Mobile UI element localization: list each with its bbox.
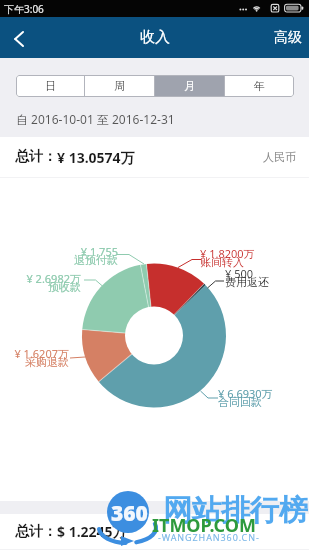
staticText: ¥ 6.6930万 (218, 386, 288, 401)
staticText: ¥ 1.8200万 (200, 246, 270, 261)
staticText: 费用返还 (225, 275, 285, 289)
staticText: 周 (114, 79, 125, 93)
staticText: ¥ 13.0574万 (57, 148, 135, 167)
button[interactable]: 日 (16, 75, 84, 97)
button[interactable]: 周 (85, 75, 154, 97)
staticText: 月 (184, 79, 195, 93)
staticText: $ 1.2245万 (57, 522, 127, 541)
button[interactable]: 月 (155, 75, 224, 97)
staticText: 合同回款 (218, 395, 288, 409)
staticText: 预收款 (11, 280, 81, 294)
staticText: 360 (111, 499, 148, 528)
staticText: 账间转入 (200, 255, 270, 269)
staticText: 下午3:06 (4, 2, 44, 16)
staticText: 采购退款 (0, 355, 69, 369)
button[interactable]: Back (0, 17, 38, 58)
staticText: 总计： (15, 523, 57, 541)
staticText: 人民币 (263, 150, 296, 164)
staticText: ¥ 2.6982万 (11, 271, 81, 286)
staticText: -WANGZHAN360.CN- (158, 531, 260, 543)
staticText: ¥ 500 (225, 266, 285, 281)
staticText: 总计： (15, 148, 57, 166)
staticText: 自 2016-10-01 至 2016-12-31 (16, 111, 175, 127)
staticText: 日 (45, 79, 56, 93)
staticText: ¥ 1,755 (48, 244, 118, 259)
staticText: 高级 (274, 29, 302, 47)
staticText: 退预付款 (48, 253, 118, 267)
staticText: ITMOP.COM (152, 513, 257, 538)
button[interactable]: 高级 (262, 18, 309, 58)
staticText: 年 (254, 79, 265, 93)
staticText: 收入 (140, 28, 170, 47)
staticText: 网站排行榜 (163, 492, 308, 529)
button[interactable]: 年 (225, 75, 294, 97)
staticText: ¥ 1.6207万 (0, 346, 69, 361)
